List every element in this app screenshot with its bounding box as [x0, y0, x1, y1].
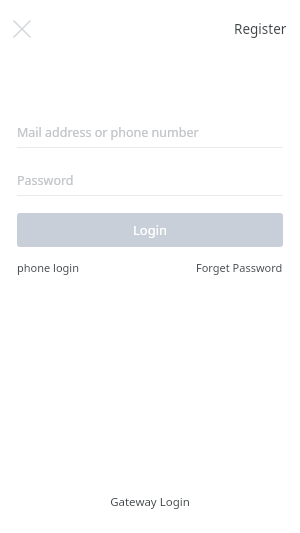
button[interactable]: Register [229, 14, 292, 44]
staticText: Mail address or phone number [17, 124, 199, 141]
button[interactable]: phone login [17, 256, 79, 279]
button[interactable]: Close [5, 12, 39, 46]
staticText: phone login [17, 260, 79, 275]
staticText: Register [234, 20, 287, 38]
staticText: Gateway Login [110, 494, 190, 510]
button[interactable]: Login [17, 213, 283, 247]
staticText: Forget Password [196, 260, 283, 275]
staticText: Password [17, 172, 74, 189]
button[interactable]: Password [17, 170, 283, 191]
button[interactable]: Mail address or phone number [17, 122, 283, 143]
button[interactable]: Forget Password [196, 256, 283, 279]
button[interactable]: Gateway Login [98, 490, 202, 514]
staticText: Login [133, 221, 168, 239]
